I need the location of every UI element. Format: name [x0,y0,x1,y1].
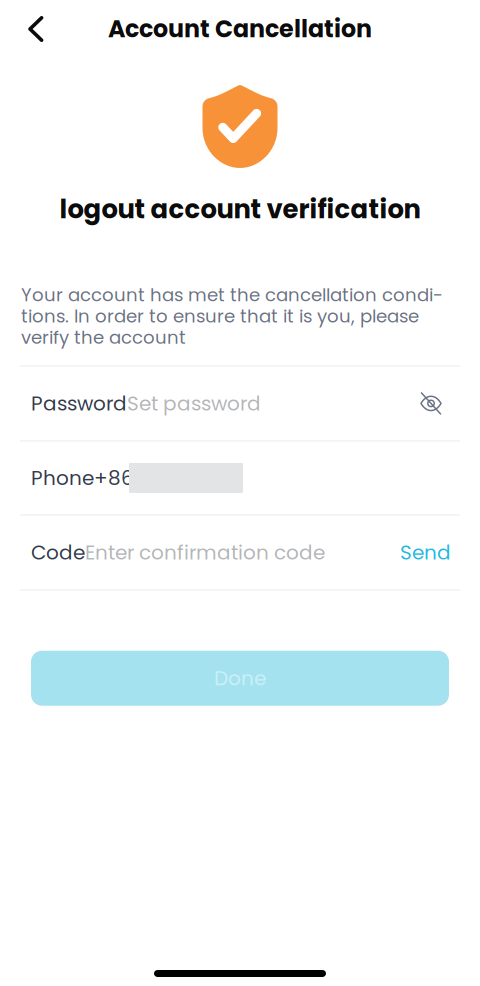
staticText: Password [31,389,127,417]
staticText: Send [400,538,451,566]
staticText: Your account has met the cancellation co… [21,282,443,308]
staticText: verify the account [21,325,186,350]
staticText: Done [214,664,266,692]
button[interactable]: Back [14,7,58,51]
button[interactable]: Done [31,651,449,706]
staticText: Set password [127,389,261,417]
staticText: Account Cancellation [108,12,372,46]
button[interactable]: Show password [413,385,449,421]
staticText: Code [31,538,85,566]
staticText: Enter confirmation code [85,538,325,566]
staticText: tions. In order to ensure that it is you… [21,303,419,329]
button[interactable]: Send [384,528,449,576]
staticText: logout account verification [59,191,420,227]
staticText: Phone+86138 0000 0000 [31,464,246,492]
